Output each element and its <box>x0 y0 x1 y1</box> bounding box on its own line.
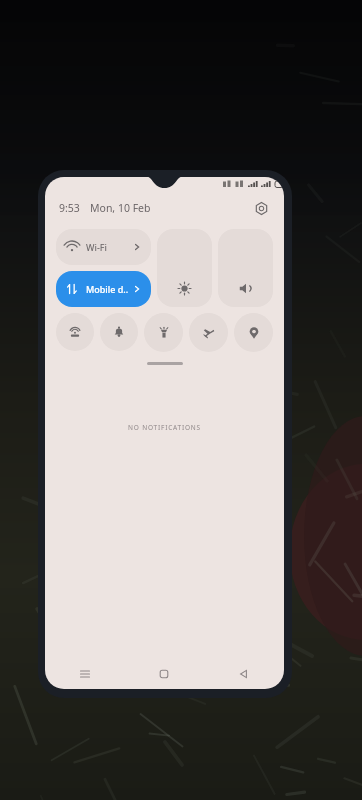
button[interactable]: Back <box>204 659 284 689</box>
button[interactable]: Slider <box>218 229 273 307</box>
staticText: 9:53 <box>59 201 80 215</box>
button[interactable]: Airplane mode <box>189 313 228 352</box>
button[interactable]: Home <box>124 659 204 689</box>
button[interactable]: Recents <box>45 659 124 689</box>
button[interactable]: Sound <box>100 313 138 351</box>
staticText: Mobile d.. <box>86 283 129 295</box>
button[interactable]: Wi-Fi <box>56 229 151 265</box>
button[interactable]: Slider <box>157 229 212 307</box>
button[interactable]: Hotspot <box>56 313 94 351</box>
button[interactable]: Expand <box>147 362 183 365</box>
button[interactable]: Settings <box>250 197 272 219</box>
button[interactable]: Mobile d.. <box>56 271 151 307</box>
staticText: NO NOTIFICATIONS <box>45 423 284 432</box>
staticText: Wi-Fi <box>86 241 107 253</box>
button[interactable]: Flashlight <box>144 313 183 352</box>
staticText: Mon, 10 Feb <box>90 201 151 215</box>
button[interactable]: Location <box>234 313 273 352</box>
